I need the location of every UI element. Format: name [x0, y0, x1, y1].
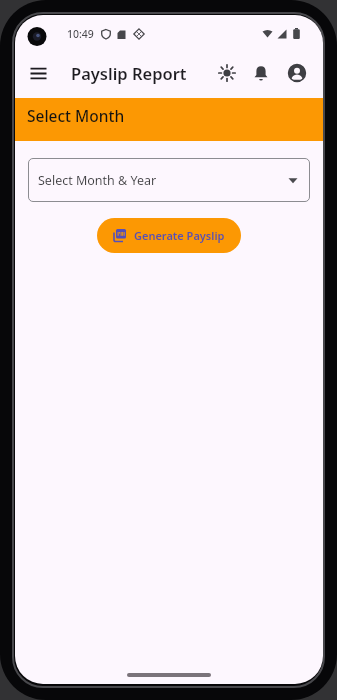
button[interactable]: Select Month & Year	[28, 158, 310, 202]
button[interactable]	[285, 61, 309, 85]
button[interactable]: Generate Payslip	[97, 218, 241, 253]
staticText: Payslip Report	[71, 62, 187, 84]
staticText: 10:49	[67, 27, 94, 41]
staticText: Select Month & Year	[38, 172, 157, 189]
staticText: Generate Payslip	[134, 228, 225, 243]
button[interactable]	[26, 61, 50, 85]
staticText: Select Month	[27, 105, 125, 126]
button[interactable]	[249, 61, 273, 85]
button[interactable]	[215, 61, 239, 85]
